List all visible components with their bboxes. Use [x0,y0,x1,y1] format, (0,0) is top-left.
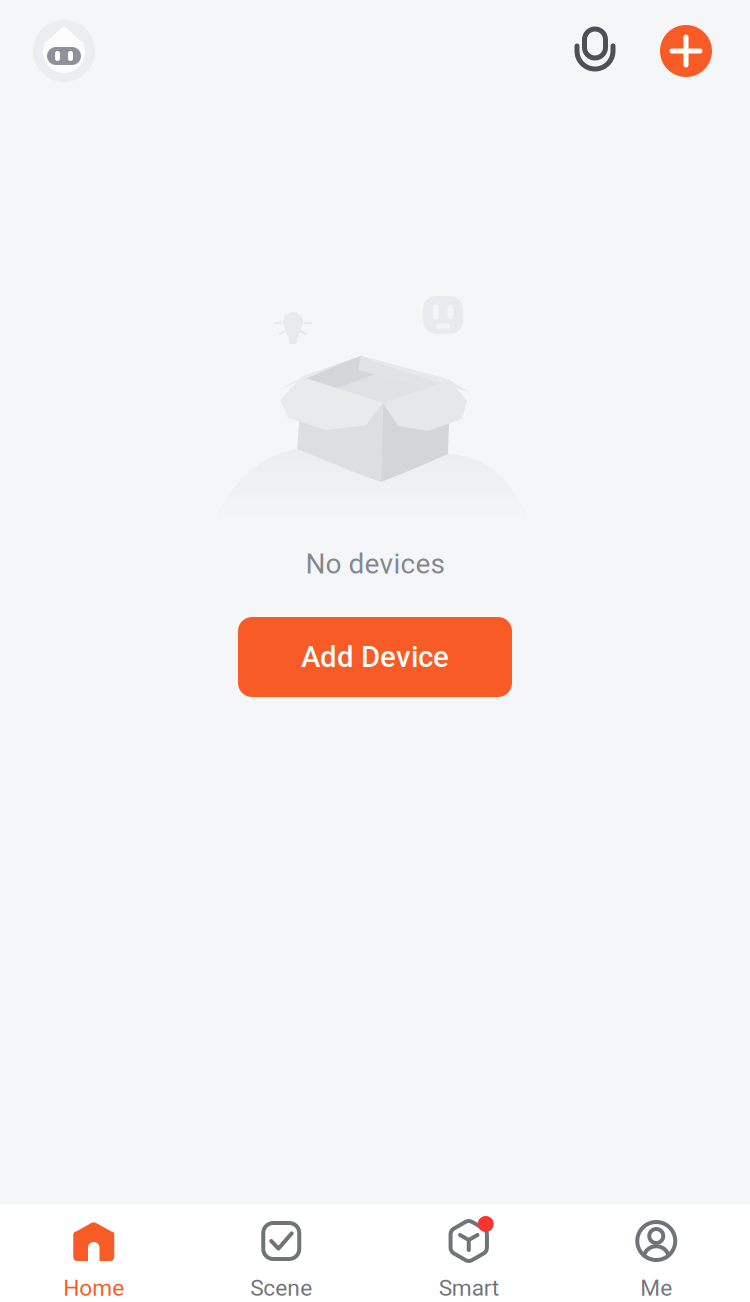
staticText: Add Device [301,640,449,674]
staticText: Smart [439,1275,499,1301]
button[interactable]: Voice control [552,7,638,95]
button[interactable]: Add Device [238,617,512,697]
button[interactable]: Scene [187,1205,375,1302]
staticText: No devices [305,548,444,580]
button[interactable]: Smart [375,1205,562,1302]
button[interactable]: Add device [638,7,750,95]
button[interactable]: Home [0,1205,187,1302]
staticText: Home [63,1275,124,1301]
button[interactable]: Me [562,1205,750,1302]
staticText: Me [640,1275,672,1301]
staticText: Scene [250,1275,312,1301]
button[interactable]: Profile [0,7,116,95]
